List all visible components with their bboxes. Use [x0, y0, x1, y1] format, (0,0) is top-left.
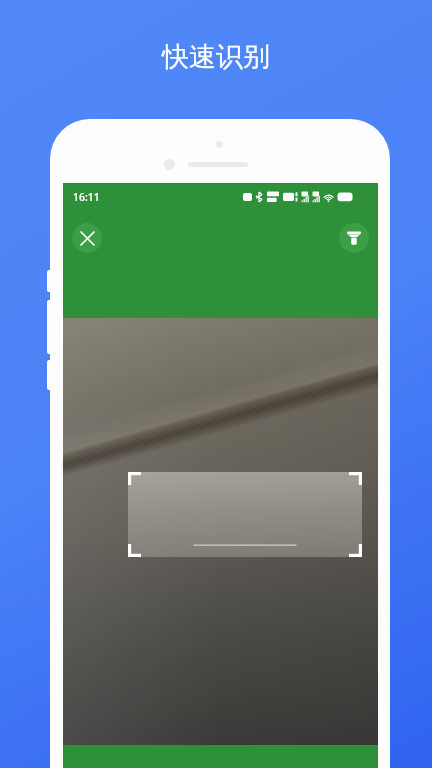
button[interactable]: Flashlight	[339, 223, 369, 253]
button[interactable]: Close	[72, 223, 102, 253]
staticText: 16:11	[73, 190, 100, 204]
button[interactable]: Scan area	[128, 472, 362, 557]
staticText: 快速识别	[162, 40, 270, 74]
